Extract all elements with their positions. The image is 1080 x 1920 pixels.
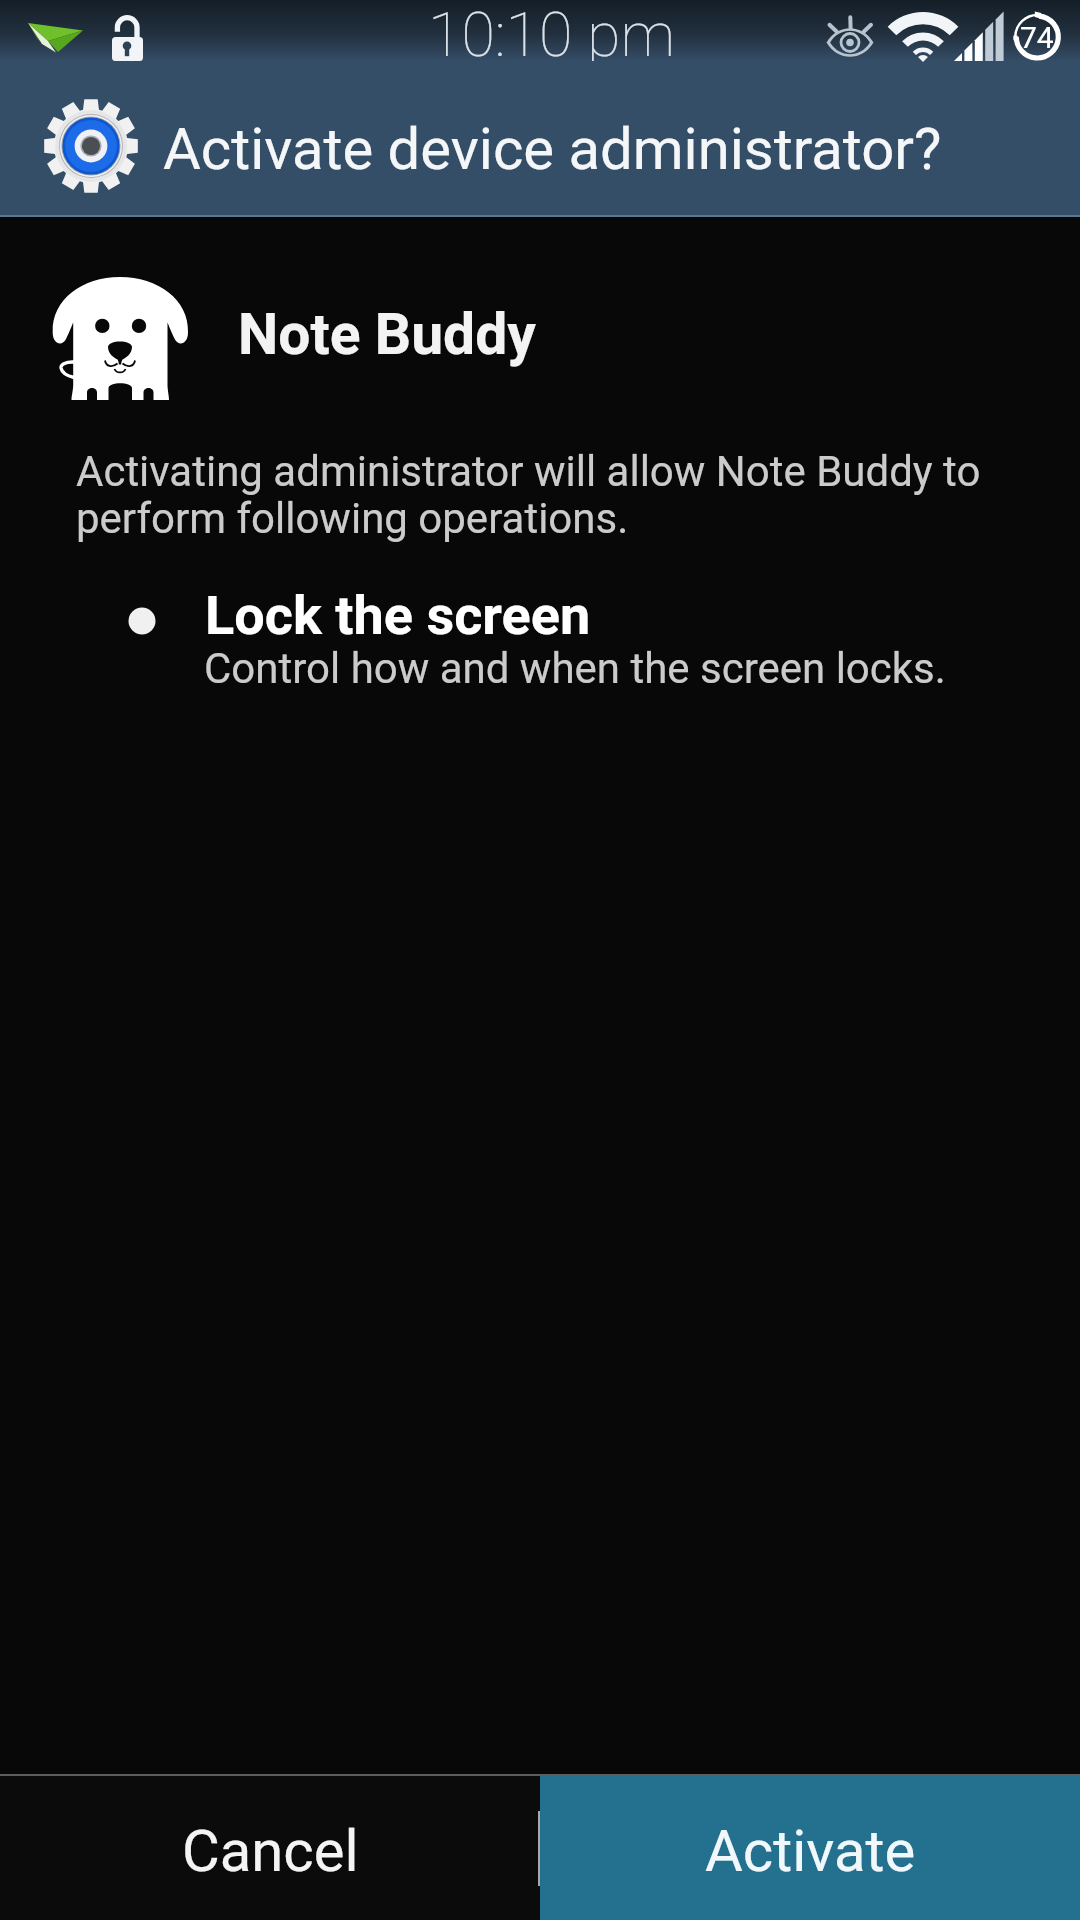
staticText: 74 — [1020, 20, 1054, 55]
button[interactable]: Cancel — [0, 1776, 540, 1920]
staticText: Control how and when the screen locks. — [204, 644, 946, 693]
staticText: Activate device administrator? — [163, 115, 942, 183]
staticText: 10:10 pm — [428, 0, 676, 61]
staticText: Cancel — [182, 1817, 359, 1885]
staticText: Note Buddy — [238, 301, 536, 368]
button[interactable]: Activate — [540, 1776, 1080, 1920]
other: Settings — [43, 98, 139, 194]
staticText: Lock the screen — [205, 584, 591, 647]
staticText: Activate — [705, 1817, 916, 1885]
staticText: Activating administrator will allow Note… — [76, 447, 1011, 543]
